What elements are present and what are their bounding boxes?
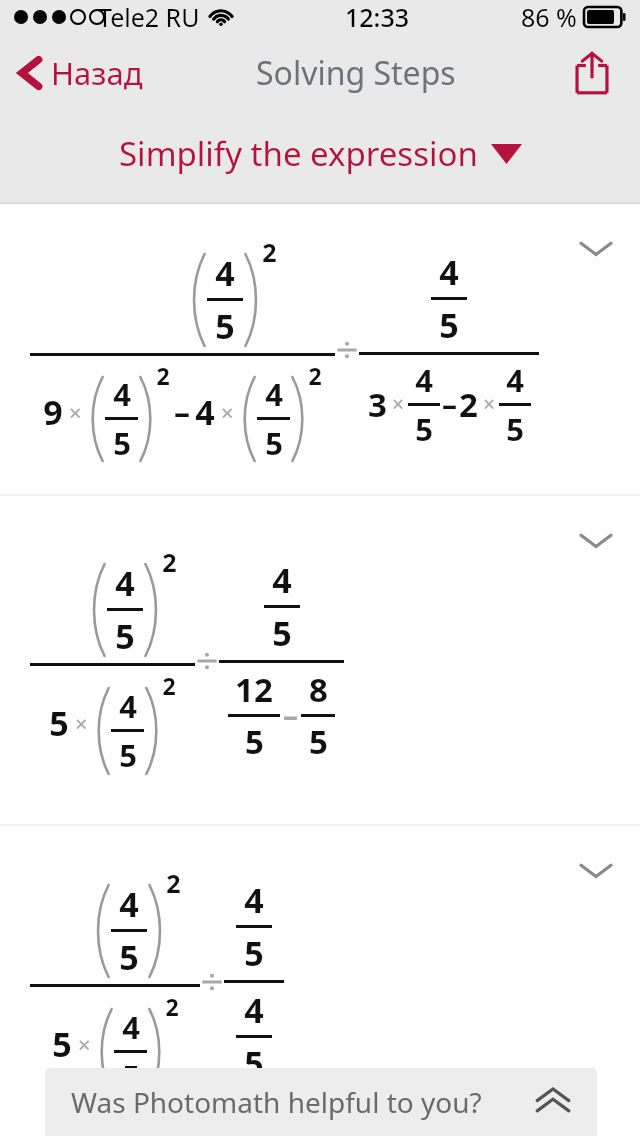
staticText: 5 (119, 734, 137, 776)
staticText: 2 (156, 360, 170, 391)
staticText: 4 (115, 560, 135, 606)
staticText: 2 (162, 545, 177, 579)
staticText: 4 (215, 250, 235, 296)
staticText: × (69, 397, 82, 427)
staticText: 4 (119, 881, 139, 927)
staticText: 5 (122, 1055, 140, 1097)
staticText: 4 (506, 359, 524, 401)
staticText: 8 (309, 667, 328, 712)
staticText: 4 (195, 389, 215, 435)
staticText: 86 % (521, 0, 577, 34)
button[interactable]: 4 (0, 496, 640, 824)
staticText: 5 (113, 422, 131, 464)
staticText: × (483, 390, 496, 419)
staticText: Was Photomath helpful to you? (71, 1083, 482, 1121)
button[interactable]: Назад (14, 46, 147, 100)
staticText: 5 (244, 1040, 264, 1086)
staticText: 5 (115, 613, 135, 659)
staticText: Tele2 RU (98, 0, 200, 34)
staticText: 4 (244, 877, 264, 923)
staticText: 4 (415, 359, 433, 401)
staticText: 4 (272, 557, 292, 603)
staticText: 5 (215, 303, 235, 349)
staticText: 5 (265, 422, 283, 464)
staticText: 2 (165, 991, 179, 1022)
staticText: 2 (166, 866, 181, 900)
staticText: 3 (368, 382, 387, 427)
button[interactable]: Expand step (574, 848, 618, 892)
button[interactable]: 4 (0, 204, 640, 494)
button[interactable]: Expand step (574, 226, 618, 270)
button[interactable]: 4 (0, 826, 640, 1136)
staticText: × (221, 397, 234, 427)
staticText: 5 (309, 719, 328, 764)
staticText: 9 (43, 389, 63, 435)
staticText: 4 (265, 373, 283, 415)
staticText: 2 (262, 235, 277, 269)
staticText: 5 (119, 934, 139, 980)
staticText: Simplify the expression (119, 131, 478, 176)
staticText: 4 (113, 373, 131, 415)
staticText: 4 (122, 1006, 140, 1048)
staticText: 12:33 (345, 0, 410, 34)
staticText: 2 (308, 360, 322, 391)
staticText: × (75, 708, 88, 738)
staticText: 5 (415, 408, 433, 450)
staticText: 4 (244, 987, 264, 1033)
staticText: 5 (52, 1021, 72, 1067)
staticText: – (283, 695, 298, 736)
staticText: 5 (245, 719, 264, 764)
staticText: 2 (162, 670, 176, 701)
button[interactable]: Share (566, 47, 618, 99)
button[interactable]: Expand step (574, 518, 618, 562)
button[interactable]: Simplify the expression (0, 104, 640, 202)
staticText: 5 (439, 302, 459, 348)
staticText: 12 (235, 667, 273, 712)
staticText: 4 (439, 249, 459, 295)
staticText: 2 (459, 382, 478, 427)
staticText: Solving Steps (256, 51, 456, 95)
staticText: 5 (244, 930, 264, 976)
staticText: – (442, 384, 457, 425)
staticText: 5 (506, 408, 524, 450)
button[interactable]: Was Photomath helpful to you? (45, 1068, 597, 1136)
staticText: 4 (119, 685, 137, 727)
staticText: × (78, 1029, 91, 1059)
staticText: 5 (49, 700, 69, 746)
staticText: – (174, 390, 191, 434)
staticText: 5 (272, 610, 292, 656)
staticText: × (392, 390, 405, 419)
staticText: Назад (51, 52, 143, 94)
